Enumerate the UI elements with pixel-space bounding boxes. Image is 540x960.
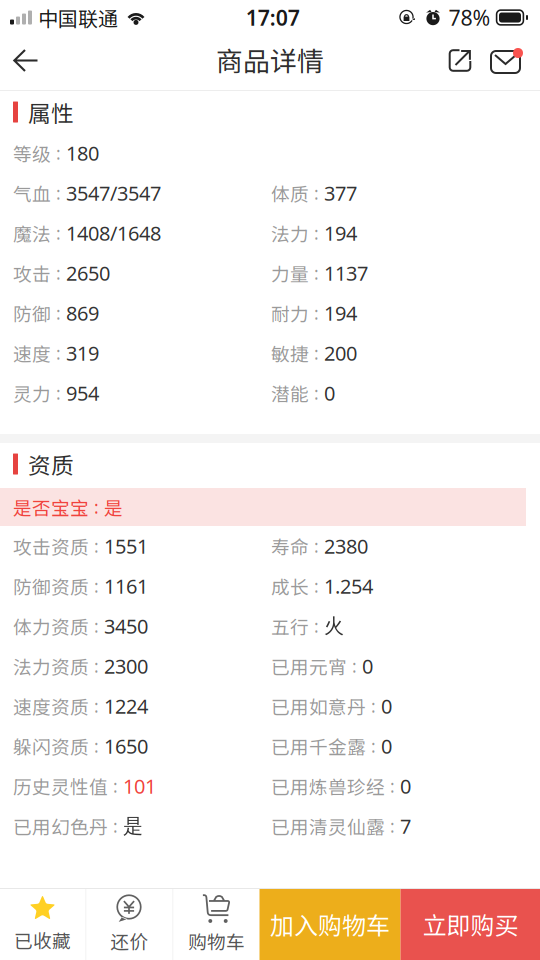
staticText: 属性: [28, 96, 74, 128]
staticText: 0: [381, 693, 392, 719]
staticText: :: [89, 734, 104, 757]
staticText: 资质: [28, 448, 74, 480]
staticText: :: [108, 814, 123, 837]
staticText: 200: [324, 340, 357, 366]
staticText: :: [347, 654, 362, 677]
staticText: 已用清灵仙露: [271, 812, 385, 839]
button[interactable]: 还价: [86, 888, 172, 960]
button[interactable]: 加入购物车: [259, 888, 400, 960]
staticText: 法力: [271, 219, 309, 246]
button[interactable]: 消息: [483, 34, 531, 86]
staticText: :: [108, 774, 123, 797]
staticText: 194: [324, 220, 357, 246]
staticText: 防御: [13, 299, 51, 326]
staticText: :: [385, 774, 400, 797]
staticText: 101: [123, 773, 156, 799]
staticText: 78%: [448, 3, 490, 32]
staticText: :: [89, 694, 104, 717]
staticText: 等级: [13, 139, 51, 166]
staticText: 火: [324, 614, 344, 638]
staticText: 0: [362, 653, 373, 679]
staticText: :: [309, 341, 324, 364]
staticText: :: [366, 694, 381, 717]
staticText: 商品详情: [216, 40, 324, 79]
staticText: :: [51, 221, 66, 244]
staticText: :: [51, 261, 66, 284]
staticText: 已用炼兽珍经: [271, 772, 385, 799]
staticText: 加入购物车: [270, 907, 390, 941]
staticText: 魔法: [13, 219, 51, 246]
staticText: :: [51, 301, 66, 324]
staticText: 0: [104, 940, 115, 960]
staticText: 灵力: [13, 379, 51, 406]
button[interactable]: 已收藏: [0, 888, 85, 960]
staticText: 防御资质: [13, 572, 89, 599]
staticText: 速度: [13, 339, 51, 366]
staticText: 体力资质: [13, 612, 89, 639]
staticText: :: [309, 181, 324, 204]
staticText: 180: [66, 140, 99, 166]
staticText: 3547/3547: [66, 180, 161, 206]
staticText: 7: [400, 813, 411, 839]
staticText: 已用元宵: [271, 652, 347, 679]
staticText: :: [309, 534, 324, 557]
staticText: 0: [400, 773, 411, 799]
staticText: :: [51, 181, 66, 204]
staticText: :: [51, 141, 66, 164]
staticText: 869: [66, 300, 99, 326]
staticText: 敏捷: [271, 339, 309, 366]
staticText: 954: [66, 380, 99, 406]
staticText: 1137: [324, 260, 368, 286]
staticText: 成长: [271, 572, 309, 599]
staticText: :: [89, 495, 104, 518]
button[interactable]: 分享: [437, 34, 483, 86]
staticText: 气血: [13, 179, 51, 206]
staticText: 体质: [271, 179, 309, 206]
staticText: 0: [324, 380, 335, 406]
staticText: 速度资质: [13, 692, 89, 719]
button[interactable]: 立即购买: [400, 888, 540, 960]
staticText: 是: [104, 493, 123, 520]
staticText: :: [89, 654, 104, 677]
staticText: 2380: [324, 533, 368, 559]
staticText: 寿命: [271, 532, 309, 559]
staticText: 1.254: [324, 573, 373, 599]
staticText: 历史灵性值: [13, 772, 108, 799]
staticText: 已收藏: [14, 926, 71, 953]
staticText: :: [309, 261, 324, 284]
staticText: 2650: [66, 260, 110, 286]
staticText: 已用如意丹: [271, 692, 366, 719]
staticText: 已用幻色丹: [13, 812, 108, 839]
staticText: 躲闪资质: [13, 732, 89, 759]
staticText: 潜能: [271, 379, 309, 406]
staticText: 本月交易: [13, 939, 89, 960]
staticText: 攻击资质: [13, 532, 89, 559]
staticText: 已用千金露: [271, 732, 366, 759]
staticText: :: [309, 301, 324, 324]
staticText: :: [51, 341, 66, 364]
staticText: 377: [324, 180, 357, 206]
staticText: 立即购买: [422, 907, 518, 941]
staticText: 力量: [271, 259, 309, 286]
staticText: 本月: [28, 896, 74, 928]
staticText: :: [89, 574, 104, 597]
staticText: :: [309, 221, 324, 244]
staticText: 1161: [104, 573, 148, 599]
staticText: 耐力: [271, 299, 309, 326]
staticText: 1224: [104, 693, 148, 719]
staticText: :: [89, 534, 104, 557]
staticText: 中国联通: [38, 3, 118, 32]
staticText: 194: [324, 300, 357, 326]
staticText: 319: [66, 340, 99, 366]
staticText: :: [89, 614, 104, 637]
staticText: 购物车: [188, 927, 245, 954]
button[interactable]: 购物车: [173, 888, 259, 960]
staticText: 0: [381, 733, 392, 759]
staticText: 是: [123, 814, 143, 838]
staticText: 1650: [104, 733, 148, 759]
staticText: 1408/1648: [66, 220, 161, 246]
button[interactable]: 返回: [0, 34, 52, 86]
staticText: :: [51, 381, 66, 404]
staticText: 还价: [110, 927, 148, 954]
staticText: 攻击: [13, 259, 51, 286]
